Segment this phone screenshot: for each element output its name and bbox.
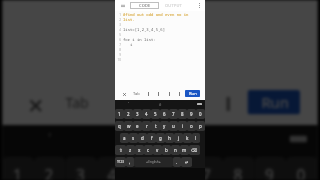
button[interactable]: OUTPUT: [165, 3, 183, 8]
staticText: 1: [115, 13, 121, 17]
staticText: 7: [202, 163, 212, 180]
button[interactable]: k: [183, 133, 192, 143]
button[interactable]: 0: [286, 156, 317, 180]
button[interactable]: x: [135, 145, 144, 155]
button[interactable]: y: [160, 121, 169, 131]
button[interactable]: Menu: [120, 3, 125, 8]
button[interactable]: Insert symbol: [175, 89, 183, 98]
button[interactable]: ⌫: [189, 145, 200, 155]
button[interactable]: Insert symbol: [139, 86, 167, 118]
button[interactable]: l: [192, 133, 200, 143]
button[interactable]: 2: [34, 156, 65, 180]
button[interactable]: m: [180, 145, 189, 155]
button[interactable]: 1: [115, 109, 124, 119]
button[interactable]: 2: [124, 109, 133, 119]
button[interactable]: Insert symbol: [154, 89, 162, 98]
button[interactable]: Tab: [133, 89, 140, 98]
button[interactable]: !?123: [115, 157, 126, 167]
button[interactable]: CODE: [130, 2, 159, 9]
button[interactable]: Insert symbol: [165, 89, 173, 98]
button[interactable]: i: [178, 121, 187, 131]
staticText: 2: [115, 18, 121, 22]
button[interactable]: 9: [254, 156, 286, 180]
staticText: 8: [181, 111, 184, 117]
staticText: u: [172, 123, 175, 129]
staticText: ,: [129, 159, 131, 165]
button[interactable]: 4: [142, 109, 151, 119]
staticText: f: [151, 135, 153, 141]
staticText: 0: [199, 111, 202, 117]
button[interactable]: v: [153, 145, 162, 155]
button[interactable]: 8: [223, 156, 254, 180]
button[interactable]: ,: [126, 157, 134, 167]
staticText: p: [199, 123, 202, 129]
button[interactable]: c: [144, 145, 153, 155]
button[interactable]: b: [162, 145, 171, 155]
button[interactable]: 7: [169, 109, 178, 119]
button[interactable]: 6: [160, 109, 169, 119]
button[interactable]: Close keyboard: [20, 90, 48, 118]
button[interactable]: ⇧: [115, 145, 126, 155]
staticText: h: [168, 135, 171, 141]
button[interactable]: Tab: [65, 86, 90, 118]
staticText: n: [174, 147, 177, 153]
staticText: 2: [127, 111, 130, 117]
button[interactable]: Insert symbol: [212, 86, 240, 118]
button[interactable]: s: [129, 133, 138, 143]
staticText: !?123: [117, 160, 124, 164]
button[interactable]: u: [169, 121, 178, 131]
button[interactable]: 4: [97, 156, 128, 180]
button[interactable]: 3: [133, 109, 142, 119]
button[interactable]: ↵: [181, 157, 192, 167]
button[interactable]: Run: [185, 90, 200, 97]
button[interactable]: q: [115, 121, 124, 131]
button[interactable]: 3: [65, 156, 97, 180]
button[interactable]: d: [138, 133, 147, 143]
button[interactable]: Insert symbol: [144, 89, 152, 98]
button[interactable]: n: [171, 145, 180, 155]
staticText: 4: [107, 163, 118, 180]
button[interactable]: g: [156, 133, 165, 143]
button[interactable]: t: [151, 121, 160, 131]
staticText: 9: [115, 53, 121, 57]
button[interactable]: 8: [178, 109, 187, 119]
button[interactable]: j: [174, 133, 183, 143]
button[interactable]: r: [142, 121, 151, 131]
staticText: ⇧: [119, 148, 123, 153]
button[interactable]: p: [196, 121, 205, 131]
button[interactable]: 9: [187, 109, 196, 119]
staticText: .: [176, 159, 178, 165]
button[interactable]: o: [187, 121, 196, 131]
staticText: v: [156, 147, 159, 153]
button[interactable]: w: [124, 121, 133, 131]
button[interactable]: 7: [191, 156, 223, 180]
button[interactable]: e: [133, 121, 142, 131]
button[interactable]: Run: [247, 90, 300, 114]
button[interactable]: Insert symbol: [104, 86, 132, 118]
button[interactable]: z: [126, 145, 135, 155]
staticText: k: [186, 135, 189, 141]
button[interactable]: 6: [160, 156, 191, 180]
staticText: i: [123, 42, 133, 47]
staticText: j: [178, 135, 180, 141]
staticText: ◂ English ▸: [146, 160, 161, 164]
button[interactable]: .: [173, 157, 181, 167]
button[interactable]: 5: [128, 156, 160, 180]
button[interactable]: 1: [2, 156, 34, 180]
button[interactable]: f: [147, 133, 156, 143]
staticText: 3: [115, 23, 121, 27]
button[interactable]: More options: [197, 3, 202, 8]
staticText: ↵: [185, 160, 189, 165]
button[interactable]: h: [165, 133, 174, 143]
staticText: 8: [233, 163, 244, 180]
staticText: 1: [118, 111, 121, 117]
button[interactable]: 0: [196, 109, 205, 119]
button[interactable]: Insert symbol: [177, 86, 205, 118]
button[interactable]: 5: [151, 109, 160, 119]
staticText: Run: [261, 93, 289, 114]
staticText: 3: [76, 163, 86, 180]
button[interactable]: Close keyboard: [120, 90, 128, 98]
button[interactable]: ◂ English ▸: [134, 157, 173, 167]
button[interactable]: a: [120, 133, 129, 143]
